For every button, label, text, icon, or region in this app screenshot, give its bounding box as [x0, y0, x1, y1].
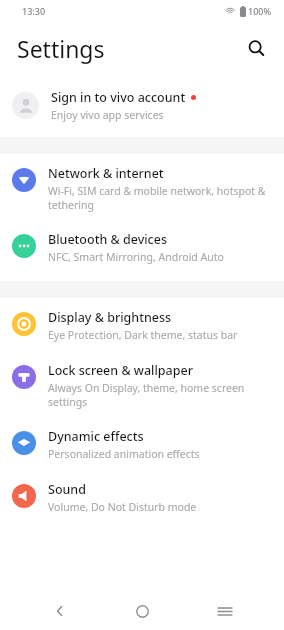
staticText: Enjoy vivo app services	[51, 108, 164, 122]
button[interactable]: Display & brightness	[0, 309, 284, 342]
button[interactable]: Sign in to vivo account	[0, 83, 284, 128]
staticText: Personalized animation effects	[48, 447, 200, 461]
staticText: NFC, Smart Mirroring, Android Auto	[48, 250, 224, 264]
button[interactable]: Recent apps	[202, 592, 248, 630]
button[interactable]: Dynamic effects	[0, 428, 284, 461]
button[interactable]: Network & internet	[0, 165, 284, 212]
staticText: 100%	[248, 5, 272, 17]
button[interactable]: Lock screen & wallpaper	[0, 362, 284, 409]
button[interactable]: Home	[119, 592, 165, 630]
staticText: Always On Display, theme, home screen se…	[48, 381, 245, 409]
staticText: Wi-Fi, SIM card & mobile network, hotspo…	[48, 184, 266, 212]
staticText: Network & internet	[48, 165, 164, 182]
button[interactable]: Bluetooth & devices	[0, 231, 284, 264]
staticText: Dynamic effects	[48, 428, 144, 445]
staticText: Eye Protection, Dark theme, status bar	[48, 328, 238, 342]
staticText: Volume, Do Not Disturb mode	[48, 500, 197, 514]
button[interactable]: Sound	[0, 481, 284, 514]
staticText: Bluetooth & devices	[48, 231, 167, 248]
staticText: Sound	[48, 481, 86, 498]
button[interactable]: Search	[238, 30, 274, 66]
staticText: Lock screen & wallpaper	[48, 362, 193, 379]
staticText: 13:30	[22, 5, 46, 17]
staticText: Settings	[17, 33, 105, 64]
button[interactable]: Back	[37, 592, 83, 630]
staticText: Display & brightness	[48, 309, 172, 326]
staticText: Sign in to vivo account	[51, 89, 186, 106]
